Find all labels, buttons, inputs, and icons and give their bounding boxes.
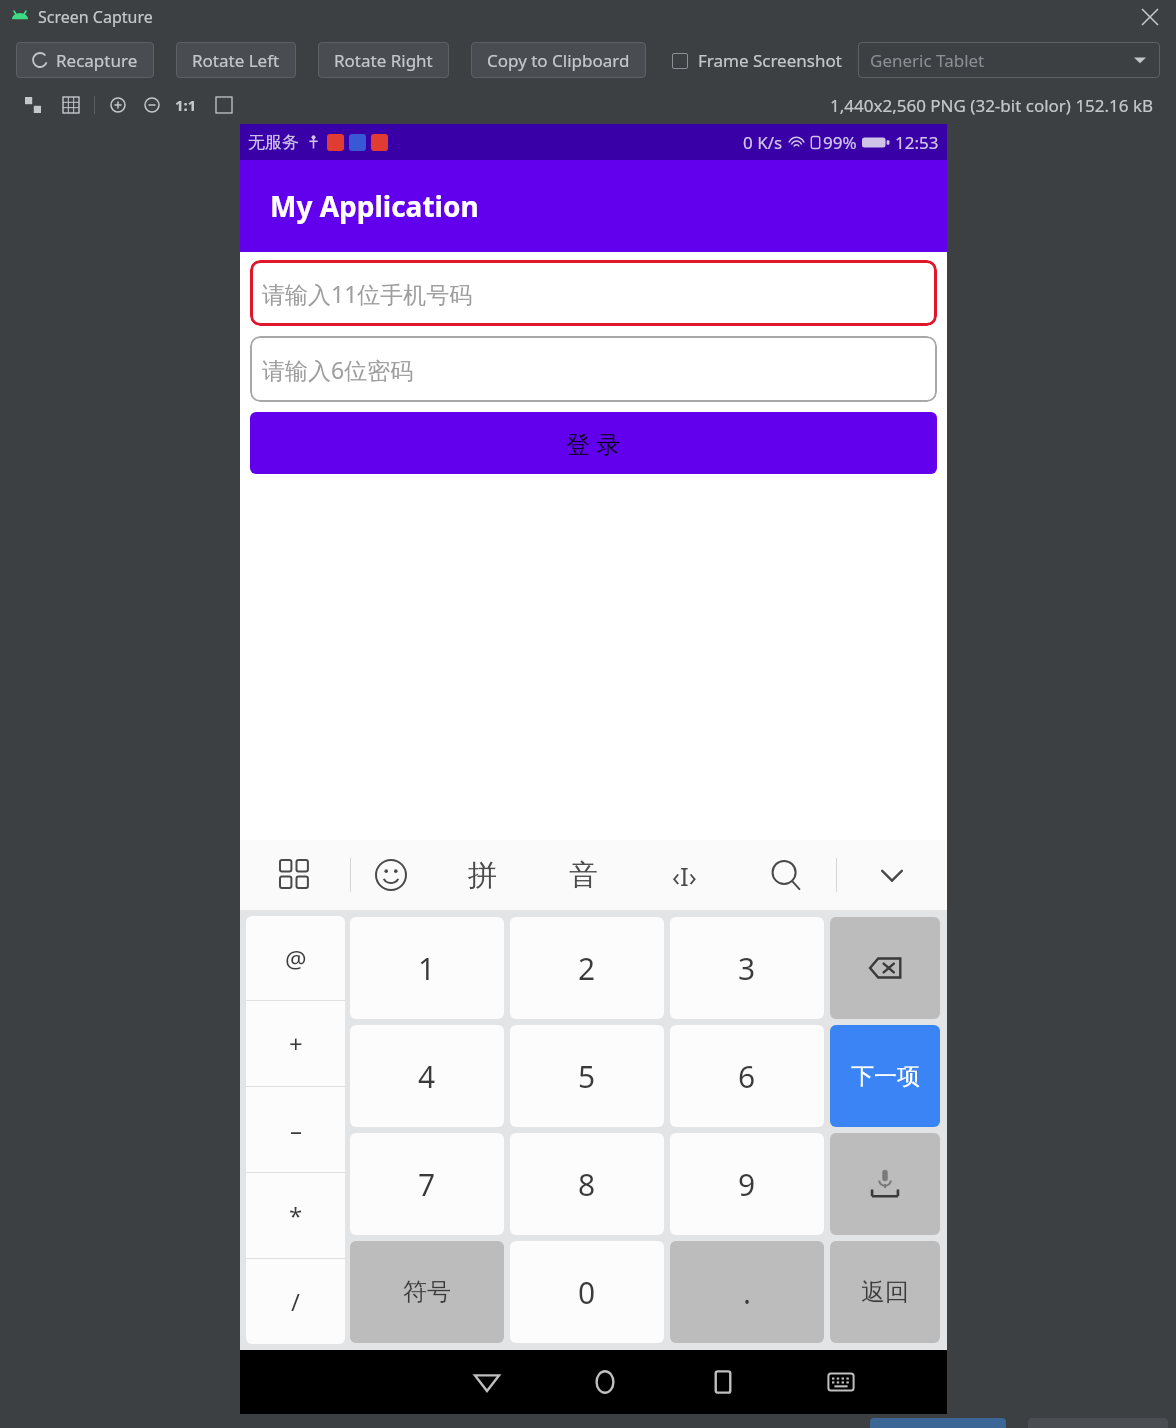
staticText: 3 xyxy=(738,948,756,989)
button[interactable]: 请输入6位密码 xyxy=(250,336,937,402)
button[interactable]: Generic Tablet xyxy=(858,42,1160,78)
staticText: Frame Screenshot xyxy=(698,49,842,72)
button[interactable]: 1:1 xyxy=(175,95,197,115)
button[interactable]: Close xyxy=(1136,3,1164,31)
staticText: 2 xyxy=(578,948,596,989)
button[interactable]: 4 xyxy=(350,1025,504,1127)
button[interactable]: Voice input / space xyxy=(830,1133,940,1235)
button[interactable]: Recents xyxy=(664,1350,782,1414)
button[interactable]: Home xyxy=(546,1350,664,1414)
button[interactable]: 0 xyxy=(510,1241,664,1343)
staticText: My Application xyxy=(270,187,479,225)
staticText: 登 录 xyxy=(566,427,621,460)
staticText: 1,440x2,560 PNG (32-bit color) 152.16 kB xyxy=(830,94,1154,117)
button[interactable]: Zoom in xyxy=(107,94,129,116)
staticText: Screen Capture xyxy=(38,6,153,28)
button[interactable]: 音 xyxy=(533,840,634,910)
button[interactable]: @ xyxy=(246,916,345,1000)
button[interactable]: Cursor xyxy=(634,840,735,910)
staticText: 无服务 xyxy=(248,132,299,153)
button[interactable]: 5 xyxy=(510,1025,664,1127)
button[interactable]: 8 xyxy=(510,1133,664,1235)
staticText: 返回 xyxy=(861,1277,909,1307)
button[interactable]: Recapture xyxy=(16,42,154,78)
staticText: 1:1 xyxy=(175,95,197,115)
button[interactable]: Actual size xyxy=(213,94,235,116)
staticText: 0 K/s xyxy=(743,131,783,154)
staticText: Copy to Clipboard xyxy=(487,49,630,72)
button[interactable]: Hide keyboard xyxy=(837,840,947,910)
button[interactable]: Emoji xyxy=(351,840,431,910)
staticText: 0 xyxy=(578,1272,596,1313)
staticText: Rotate Left xyxy=(192,49,280,72)
button[interactable]: 7 xyxy=(350,1133,504,1235)
button[interactable]: 下一项 xyxy=(830,1025,940,1127)
button[interactable]: * xyxy=(246,1173,345,1258)
staticText: 1 xyxy=(418,948,436,989)
button[interactable]: Zoom out xyxy=(141,94,163,116)
staticText: 拼 xyxy=(468,857,497,894)
staticText: Recapture xyxy=(56,49,138,72)
button[interactable]: 3 xyxy=(670,917,824,1019)
button[interactable]: 登 录 xyxy=(250,412,937,474)
staticText: 8 xyxy=(578,1164,596,1205)
button[interactable]: + xyxy=(246,1001,345,1086)
staticText: @ xyxy=(285,942,307,975)
button[interactable]: Rotate Right xyxy=(318,42,449,78)
staticText: ‹I› xyxy=(672,858,697,893)
button[interactable]: Rotate Left xyxy=(176,42,296,78)
staticText: Generic Tablet xyxy=(870,49,985,72)
staticText: 请输入6位密码 xyxy=(262,354,414,385)
staticText: 6 xyxy=(738,1056,756,1097)
staticText: / xyxy=(291,1285,300,1318)
button[interactable]: 返回 xyxy=(830,1241,940,1343)
button[interactable]: 符号 xyxy=(350,1241,504,1343)
staticText: + xyxy=(289,1027,303,1060)
button[interactable]: Grid xyxy=(60,94,82,116)
button[interactable]: Back xyxy=(428,1350,546,1414)
button[interactable]: / xyxy=(246,1259,345,1344)
button[interactable]: 2 xyxy=(510,917,664,1019)
button[interactable] xyxy=(870,1418,1006,1428)
staticText: 符号 xyxy=(403,1277,451,1307)
staticText: 请输入11位手机号码 xyxy=(262,278,473,309)
staticText: 9 xyxy=(738,1164,756,1205)
staticText: 12:53 xyxy=(895,131,939,154)
button[interactable]: 9 xyxy=(670,1133,824,1235)
button[interactable]: 请输入11位手机号码 xyxy=(250,260,937,326)
button[interactable]: Fit to window xyxy=(22,94,44,116)
button[interactable]: Switch keyboard xyxy=(782,1350,900,1414)
button[interactable]: Keyboard layouts xyxy=(240,840,350,910)
button[interactable]: Backspace xyxy=(830,917,940,1019)
button[interactable]: 拼 xyxy=(431,840,533,910)
button[interactable]: . xyxy=(670,1241,824,1343)
button[interactable]: Copy to Clipboard xyxy=(471,42,646,78)
staticText: 99% xyxy=(823,131,857,154)
staticText: 5 xyxy=(578,1056,596,1097)
button[interactable]: Frame Screenshot xyxy=(672,49,842,72)
staticText: 4 xyxy=(418,1056,436,1097)
staticText: 下一项 xyxy=(851,1062,920,1091)
staticText: 音 xyxy=(569,857,598,894)
staticText: – xyxy=(290,1113,302,1146)
button[interactable]: Search xyxy=(735,840,836,910)
staticText: Rotate Right xyxy=(334,49,433,72)
staticText: . xyxy=(743,1272,752,1313)
staticText: 7 xyxy=(418,1164,436,1205)
button[interactable]: 1 xyxy=(350,917,504,1019)
button[interactable]: – xyxy=(246,1087,345,1172)
button[interactable]: 6 xyxy=(670,1025,824,1127)
staticText: * xyxy=(289,1199,303,1232)
